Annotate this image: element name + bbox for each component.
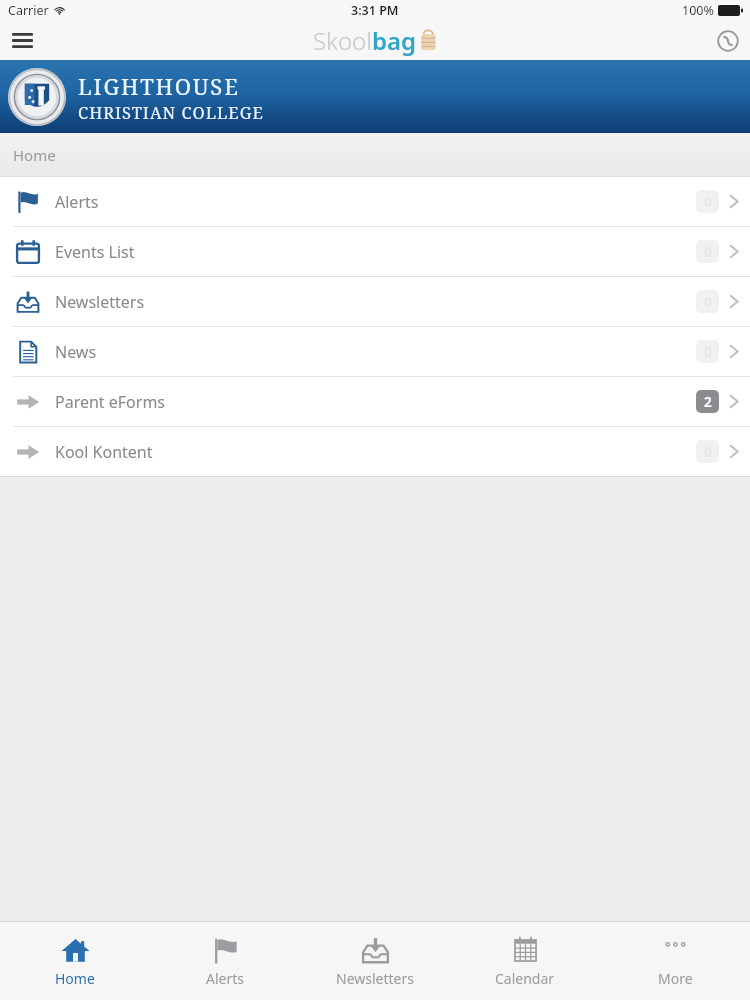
staticText: Carrier [8, 2, 49, 19]
staticText: Kool Kontent [55, 441, 153, 463]
button[interactable]: Events List [0, 227, 750, 276]
button[interactable]: Menu [0, 21, 44, 60]
staticText: bag [372, 24, 417, 57]
button[interactable]: Newsletters [300, 922, 450, 1000]
staticText: Alerts [55, 191, 99, 213]
staticText: Newsletters [336, 969, 414, 988]
button[interactable]: Home [0, 922, 150, 1000]
button[interactable]: Refresh [706, 21, 750, 60]
staticText: 0 [704, 293, 712, 311]
button[interactable]: Kool Kontent [0, 427, 750, 476]
staticText: 100% [682, 2, 714, 19]
staticText: 2 [704, 393, 712, 411]
staticText: Calendar [495, 969, 555, 988]
staticText: Home [13, 145, 56, 165]
staticText: 3:31 PM [351, 2, 399, 19]
staticText: 0 [704, 343, 712, 361]
staticText: Parent eForms [55, 391, 166, 413]
button[interactable]: More [600, 922, 750, 1000]
staticText: 0 [704, 243, 712, 261]
staticText: Home [55, 969, 95, 988]
button[interactable]: Newsletters [0, 277, 750, 326]
staticText: News [55, 341, 97, 363]
staticText: CHRISTIAN COLLEGE [78, 101, 264, 123]
staticText: Alerts [206, 969, 244, 988]
staticText: More [658, 969, 693, 988]
button[interactable]: Parent eForms [0, 377, 750, 426]
staticText: Events List [55, 241, 135, 263]
button[interactable]: Calendar [450, 922, 600, 1000]
staticText: Newsletters [55, 291, 145, 313]
staticText: LIGHTHOUSE [78, 71, 240, 101]
staticText: Skool [313, 24, 372, 57]
button[interactable]: News [0, 327, 750, 376]
staticText: 0 [704, 193, 712, 211]
staticText: 0 [704, 443, 712, 461]
button[interactable]: Alerts [150, 922, 300, 1000]
button[interactable]: Alerts [0, 177, 750, 226]
